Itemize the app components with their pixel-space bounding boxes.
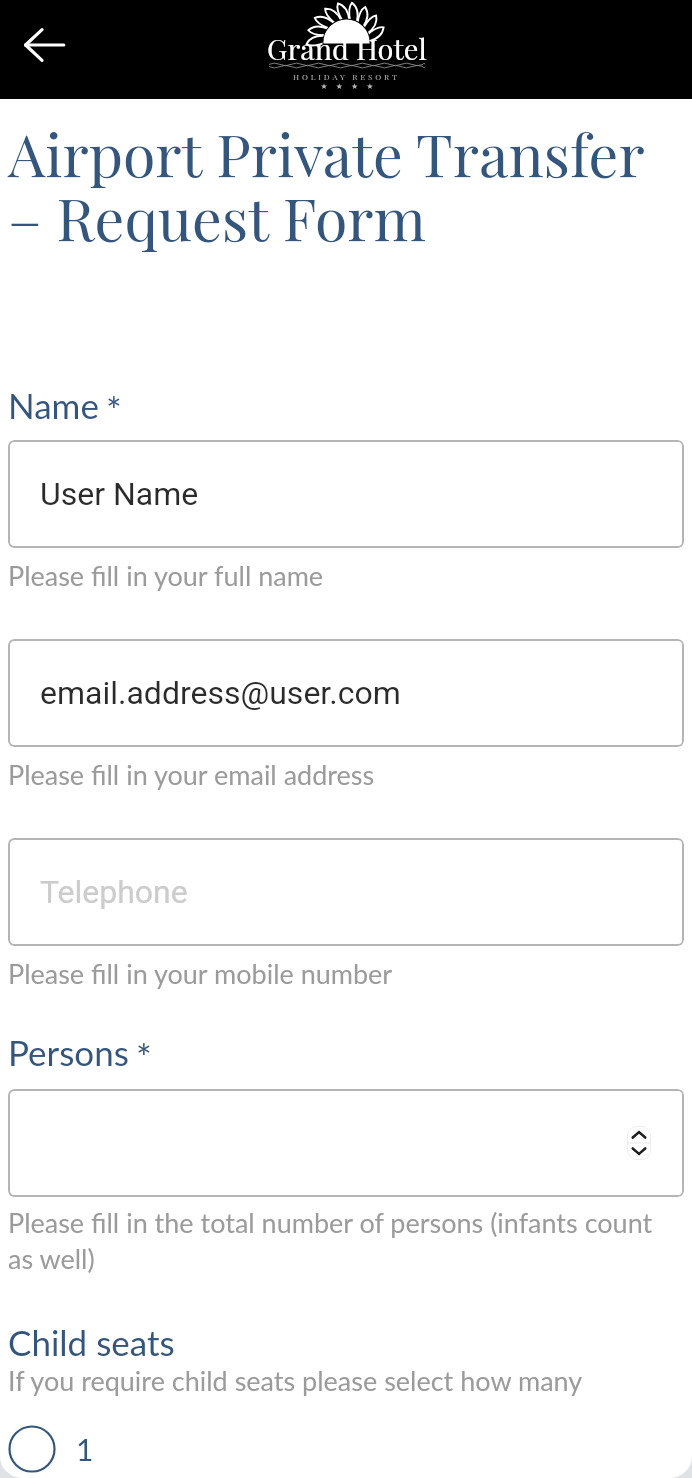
staticText: Grand Hotel	[267, 29, 427, 68]
button[interactable]: 1	[8, 1425, 94, 1473]
button[interactable]: Telephone	[8, 838, 684, 946]
staticText: User Name	[40, 475, 199, 513]
button[interactable]: Back	[8, 9, 80, 81]
button[interactable]: email.address@user.com	[8, 639, 684, 747]
staticText: If you require child seats please select…	[8, 1364, 583, 1396]
staticText: Airport Private Transfer – Request Form	[8, 113, 668, 256]
staticText: 1	[76, 1431, 94, 1467]
staticText: email.address@user.com	[40, 674, 401, 712]
staticText: Please fill in the total number of perso…	[8, 1206, 684, 1274]
staticText: *	[106, 387, 122, 431]
staticText: Please fill in your mobile number	[8, 957, 393, 989]
staticText: Telephone	[40, 873, 188, 911]
staticText: Please fill in your full name	[8, 559, 324, 591]
button[interactable]: User Name	[8, 440, 684, 548]
staticText: Please fill in your email address	[8, 758, 375, 790]
button[interactable]: Increase or decrease number of persons	[8, 1089, 684, 1197]
staticText: HOLIDAY RESORT	[293, 71, 400, 82]
staticText: Persons	[8, 1031, 129, 1073]
staticText: Name	[8, 384, 99, 426]
button[interactable]: Increase or decrease number of persons	[627, 1126, 651, 1160]
staticText: *	[136, 1034, 152, 1078]
staticText: Child seats	[8, 1321, 175, 1363]
